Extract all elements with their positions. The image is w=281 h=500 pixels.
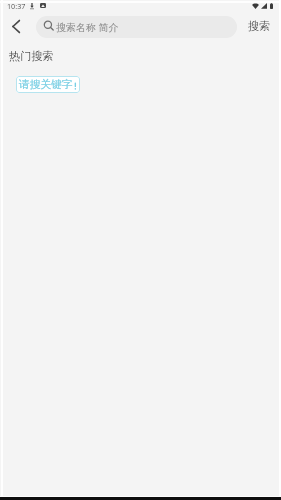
staticText: 热门搜索 — [9, 49, 54, 63]
staticText: 搜索名称 简介 — [56, 20, 119, 34]
staticText: 请搜关键字 — [19, 78, 73, 92]
button[interactable]: 搜索名称 简介 — [36, 16, 237, 38]
staticText: 搜索 — [248, 19, 271, 33]
button[interactable]: 搜索 — [240, 16, 278, 38]
button[interactable]: 请搜关键字 — [16, 76, 80, 93]
staticText: 10:37 — [7, 1, 26, 11]
button[interactable]: Back — [0, 16, 32, 38]
